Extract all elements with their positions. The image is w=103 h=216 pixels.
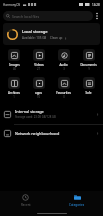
staticText: Available: 105 GB <box>22 36 47 40</box>
staticText: HarmonyOS <box>3 3 21 7</box>
button[interactable]: Network neighbourhood <box>0 125 103 142</box>
staticText: 9 <box>88 67 90 71</box>
staticText: Categories <box>69 203 85 207</box>
staticText: Search local files <box>12 14 40 19</box>
staticText: 1 <box>13 95 15 99</box>
button[interactable]: More options <box>93 10 100 22</box>
staticText: Favourites <box>56 91 71 95</box>
staticText: 0 <box>63 95 65 99</box>
button[interactable]: apps <box>26 76 51 100</box>
button[interactable]: Categories <box>51 191 103 210</box>
staticText: 27 <box>37 67 40 71</box>
staticText: Safe <box>85 91 92 95</box>
staticText: Videos <box>34 63 44 67</box>
button[interactable]: Archives <box>2 76 26 100</box>
button[interactable]: Internal storage <box>0 104 103 124</box>
button[interactable]: Safe <box>76 76 101 96</box>
staticText: 14:28 <box>92 3 100 7</box>
staticText: 10 <box>37 95 40 99</box>
staticText: 3 <box>63 67 65 71</box>
button[interactable]: Favourites <box>51 76 76 100</box>
button[interactable]: Images <box>2 48 26 72</box>
staticText: Clean up <box>50 36 63 40</box>
button[interactable]: Search local files <box>3 11 93 21</box>
button[interactable]: Documents <box>76 48 101 72</box>
staticText: 40 <box>13 67 16 71</box>
staticText: Network neighbourhood <box>15 131 60 136</box>
button[interactable]: Local storage <box>3 23 100 45</box>
staticText: Local storage <box>22 29 48 34</box>
button[interactable]: Recent <box>0 191 51 210</box>
staticText: Internal storage <box>15 109 44 114</box>
staticText: Storage used: 23.08 GB/128 GB <box>15 115 56 119</box>
staticText: Audio <box>59 63 68 67</box>
staticText: Documents <box>80 63 97 67</box>
button[interactable]: Audio <box>51 48 76 72</box>
staticText: Archives <box>8 91 20 95</box>
button[interactable]: Videos <box>26 48 51 72</box>
staticText: Images <box>9 63 20 67</box>
staticText: apps <box>35 91 42 95</box>
staticText: Recent <box>21 203 31 207</box>
